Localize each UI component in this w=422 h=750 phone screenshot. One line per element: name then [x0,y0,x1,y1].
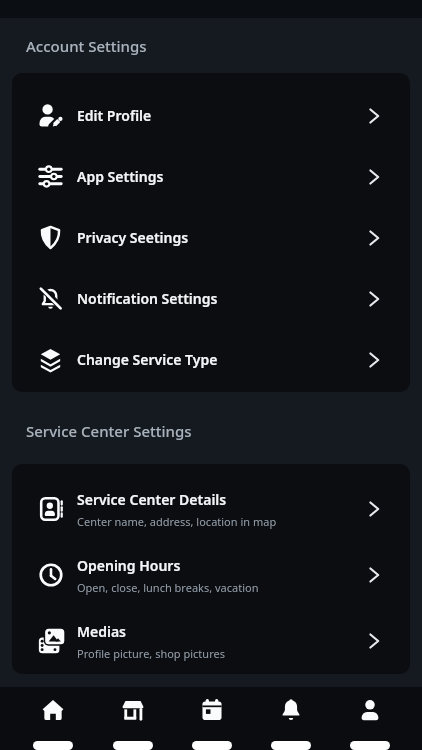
staticText: Privacy Seetings [77,228,189,247]
staticText: Service Center Details [77,490,227,509]
button[interactable]: Medias [12,608,410,674]
button[interactable] [172,687,251,750]
button[interactable] [93,687,172,750]
button[interactable]: Opening Hours [12,542,410,608]
button[interactable]: Change Service Type [12,329,410,390]
staticText: App Settings [77,167,164,186]
button[interactable]: App Settings [12,146,410,207]
staticText: Notification Settings [77,289,218,308]
staticText: Profile picture, shop pictures [77,646,225,661]
staticText: Medias [77,622,127,641]
button[interactable] [13,687,93,750]
button[interactable] [251,687,330,750]
button[interactable]: Privacy Seetings [12,207,410,268]
button[interactable]: Edit Profile [12,85,410,146]
staticText: Account Settings [26,36,147,56]
staticText: Open, close, lunch breaks, vacation [77,580,259,595]
button[interactable]: Notification Settings [12,268,410,329]
staticText: Edit Profile [77,106,152,125]
staticText: Service Center Settings [26,421,192,441]
staticText: Center name, address, location in map [77,514,277,529]
button[interactable]: Service Center Details [12,476,410,542]
button[interactable] [330,687,409,750]
staticText: Change Service Type [77,350,218,369]
staticText: Opening Hours [77,556,181,575]
